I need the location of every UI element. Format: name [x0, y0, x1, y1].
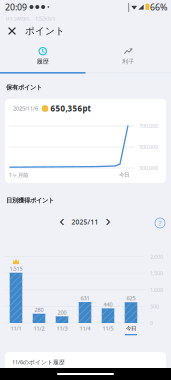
staticText: 200: [57, 309, 66, 316]
staticText: 300,000: [139, 164, 158, 172]
staticText: 631: [80, 294, 89, 302]
staticText: 11/5: [102, 325, 113, 332]
staticText: ?: [158, 218, 161, 228]
staticText: 日別獲得ポイント: [6, 197, 54, 204]
staticText: 700,000: [139, 122, 158, 130]
staticText: 20:09: [5, 1, 27, 13]
staticText: 利子: [122, 58, 134, 65]
button[interactable]: Previous month: [57, 216, 66, 227]
staticText: 0: [150, 319, 153, 327]
staticText: 今日: [119, 172, 129, 178]
staticText: 2025/11: [71, 217, 98, 227]
staticText: 2,000: [150, 253, 163, 260]
staticText: 500: [150, 303, 159, 310]
staticText: 1,515: [9, 265, 22, 272]
staticText: 11/4: [79, 325, 90, 332]
staticText: 1:52kb/s: [35, 15, 55, 22]
staticText: 66%: [150, 1, 167, 13]
button[interactable]: 利子: [85, 42, 171, 70]
staticText: 11/1: [10, 325, 21, 332]
staticText: 0:1.5MB/s: [6, 15, 29, 22]
staticText: 11/3: [56, 325, 67, 332]
button[interactable]: Close: [4, 23, 20, 39]
staticText: 1,000: [150, 286, 163, 293]
staticText: 保有ポイント: [6, 84, 42, 91]
staticText: 1ヶ月前: [9, 171, 28, 179]
button[interactable]: Help: [155, 218, 165, 228]
staticText: 500,000: [139, 143, 158, 151]
staticText: 11/6のポイント履歴: [12, 358, 65, 366]
staticText: 履歴: [37, 58, 49, 65]
staticText: |: [126, 2, 130, 12]
staticText: ポイント: [25, 25, 65, 37]
staticText: 625: [126, 294, 135, 302]
staticText: 650,356pt: [51, 103, 91, 114]
staticText: 11/2: [33, 325, 44, 332]
button[interactable]: Next month: [103, 216, 112, 227]
staticText: 440: [103, 301, 112, 308]
button[interactable]: 履歴: [0, 42, 85, 70]
button[interactable]: 11/6のポイント履歴: [5, 352, 166, 372]
staticText: 1,500: [150, 269, 163, 277]
staticText: 2025/11/6: [13, 105, 38, 112]
staticText: 今日: [126, 325, 136, 332]
staticText: 280: [34, 306, 43, 313]
